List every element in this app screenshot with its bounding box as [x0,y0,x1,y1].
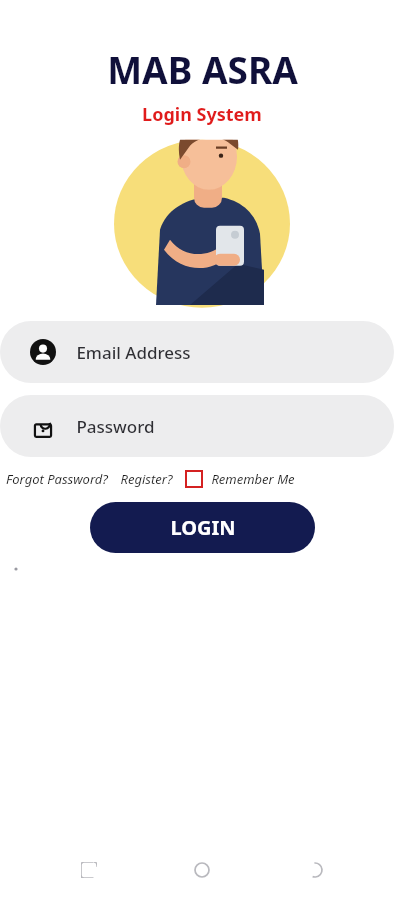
button[interactable]: Email Address [0,321,394,383]
button[interactable]: Recent apps [72,853,106,887]
staticText: Remember Me [211,470,295,488]
staticText: LOGIN [170,514,236,541]
staticText: Register? [120,470,173,488]
button[interactable]: Register? [120,470,173,488]
button[interactable]: Home [185,853,219,887]
button[interactable]: Password [0,395,394,457]
staticText: Login System [142,102,262,127]
staticText: MAB ASRA [107,44,298,94]
staticText: Password [76,415,155,438]
staticText: Forgot Password? [6,470,108,488]
button[interactable]: LOGIN [90,502,315,553]
button[interactable]: Forgot Password? [6,470,108,488]
staticText: Email Address [76,341,191,364]
button[interactable]: Remember Me [185,470,295,488]
button[interactable]: Back [298,853,332,887]
